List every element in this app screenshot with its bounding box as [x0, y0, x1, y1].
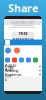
staticText: example.com — [11, 19, 35, 25]
staticText: RESEARCH — [12, 37, 33, 42]
staticText: FREE — [18, 31, 27, 36]
staticText: Share — [8, 1, 38, 15]
staticText: Add Bookmark — [5, 66, 23, 82]
staticText: Copy — [5, 64, 14, 69]
staticText: Add to Reading List — [5, 62, 18, 78]
